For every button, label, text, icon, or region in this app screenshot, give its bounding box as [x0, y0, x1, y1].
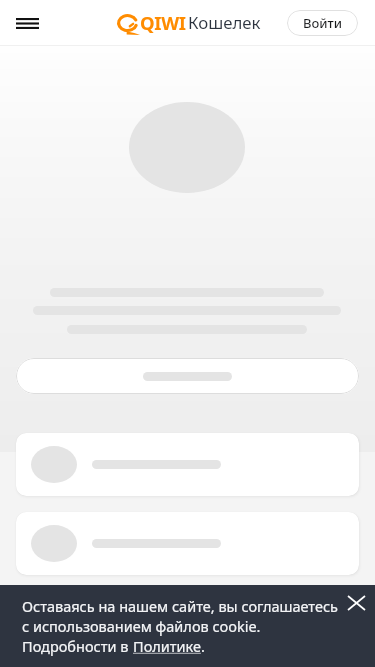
button[interactable]: Menu [8, 4, 46, 42]
staticText: Войти [303, 14, 343, 32]
button[interactable]: Войти [287, 10, 358, 36]
button[interactable]: Политике [133, 636, 201, 656]
button[interactable]: Close banner [340, 587, 372, 619]
staticText: QIWI [140, 10, 186, 35]
staticText: . [201, 636, 205, 656]
staticText: с использованием файлов cookie. [22, 616, 261, 636]
button[interactable] [16, 358, 359, 394]
button[interactable] [16, 433, 359, 496]
button[interactable] [16, 512, 359, 575]
staticText: Оставаясь на нашем сайте, вы соглашаетес… [22, 596, 338, 616]
staticText: Подробности в [22, 636, 133, 656]
staticText: Кошелек [188, 11, 261, 34]
button[interactable]: QIWI [115, 10, 261, 35]
